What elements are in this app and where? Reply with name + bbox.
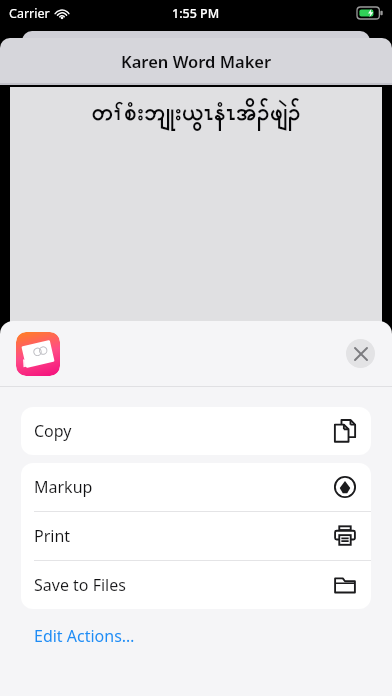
button[interactable]	[16, 332, 60, 376]
button[interactable]: Save to Files	[21, 561, 371, 609]
staticText: Print	[34, 525, 71, 547]
button[interactable]: Print	[21, 512, 371, 560]
button[interactable]: Edit Actions…	[21, 618, 371, 654]
staticText: Save to Files	[34, 574, 126, 596]
staticText: Copy	[34, 420, 72, 442]
staticText: တၢ်စံးဘျုးယွၤနံၤအိၣ်ဖျဲၣ်	[10, 97, 382, 131]
staticText: Edit Actions…	[34, 625, 135, 647]
staticText: 1:55 PM	[172, 5, 220, 22]
button[interactable]: Close	[346, 339, 375, 368]
staticText: Carrier	[9, 5, 50, 22]
button[interactable]: Copy	[21, 407, 371, 455]
button[interactable]: Markup	[21, 463, 371, 511]
staticText: Karen Word Maker	[121, 50, 272, 72]
staticText: Markup	[34, 476, 93, 498]
